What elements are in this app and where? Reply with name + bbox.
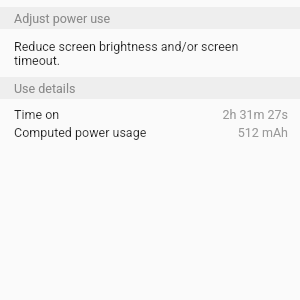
button[interactable]: Time on bbox=[0, 105, 300, 123]
staticText: 512 mAh bbox=[237, 125, 288, 140]
staticText: Use details bbox=[14, 81, 76, 96]
staticText: 2h 31m 27s bbox=[222, 107, 288, 122]
button[interactable]: Reduce screen brightness and/or screen t… bbox=[14, 39, 259, 69]
button[interactable]: Adjust power use bbox=[0, 7, 300, 29]
staticText: Computed power usage bbox=[14, 125, 147, 140]
staticText: Time on bbox=[14, 107, 60, 122]
button[interactable]: Use details bbox=[0, 77, 300, 99]
staticText: Reduce screen brightness and/or screen t… bbox=[14, 39, 259, 69]
staticText: Adjust power use bbox=[14, 11, 111, 26]
button[interactable]: Computed power usage bbox=[0, 123, 300, 141]
